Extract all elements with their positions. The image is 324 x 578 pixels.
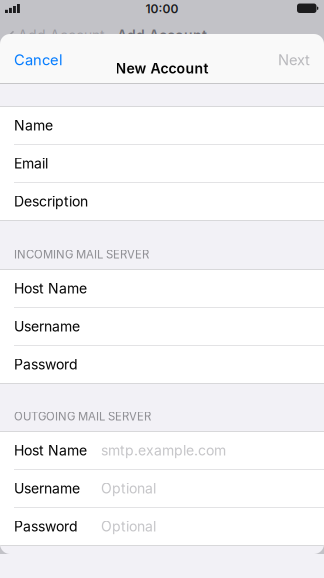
button[interactable]: Password — [0, 346, 324, 384]
staticText: Password — [14, 356, 78, 373]
button[interactable]: Description — [0, 183, 324, 221]
staticText: Optional — [101, 518, 156, 535]
staticText: Cancel — [14, 51, 63, 69]
staticText: New Account — [115, 60, 208, 77]
button[interactable]: Email — [0, 145, 324, 183]
button[interactable]: Username — [0, 308, 324, 346]
staticText: INCOMING MAIL SERVER — [14, 248, 149, 261]
button[interactable]: Password — [0, 508, 324, 546]
staticText: Add Account — [18, 27, 105, 44]
button[interactable]: Host Name — [0, 270, 324, 308]
button[interactable]: Next — [242, 47, 324, 73]
staticText: Email — [14, 155, 48, 172]
staticText: smtp.example.com — [101, 442, 226, 459]
staticText: Username — [14, 480, 80, 497]
staticText: Host Name — [14, 280, 87, 297]
staticText: Password — [14, 518, 78, 535]
staticText: Optional — [101, 480, 156, 497]
staticText: Add Account — [117, 27, 207, 44]
staticText: 10:00 — [145, 2, 178, 16]
button[interactable]: Host Name — [0, 432, 324, 470]
staticText: OUTGOING MAIL SERVER — [14, 410, 151, 423]
staticText: Username — [14, 318, 80, 335]
staticText: Name — [14, 117, 53, 134]
button[interactable]: Cancel — [0, 47, 82, 73]
button[interactable]: Username — [0, 470, 324, 508]
staticText: Description — [14, 193, 88, 210]
staticText: Host Name — [14, 442, 87, 459]
staticText: Next — [278, 51, 310, 69]
button[interactable]: Name — [0, 107, 324, 145]
